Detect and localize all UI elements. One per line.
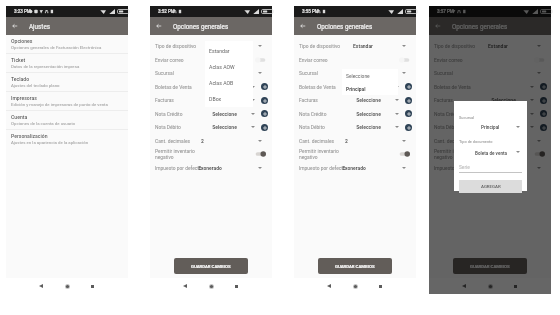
button[interactable]: Permitir inventario: [429, 147, 551, 161]
button[interactable]: Impresoras: [6, 92, 128, 111]
button[interactable]: Impuesto por defecto: [294, 161, 416, 175]
staticText: Aclas AOB: [209, 80, 234, 86]
button[interactable]: Estandar: [209, 43, 253, 59]
button[interactable]: Toggle: [255, 57, 266, 63]
button[interactable]: Tipo de dispositivo: [294, 39, 416, 53]
button[interactable]: Impuesto por defecto: [429, 161, 551, 175]
button[interactable]: GUARDAR CAMBIOS: [174, 258, 248, 274]
button[interactable]: Sucursal: [150, 66, 272, 80]
button[interactable]: Nota Crédito: [150, 107, 272, 120]
button[interactable]: Aclas AOB: [209, 75, 253, 91]
button[interactable]: Recents: [372, 278, 388, 294]
button[interactable]: Recents: [228, 278, 244, 294]
button[interactable]: Home: [59, 278, 75, 294]
button[interactable]: Add: [261, 97, 268, 104]
button[interactable]: Add: [261, 110, 268, 117]
button[interactable]: Boletas de Venta: [150, 80, 272, 93]
button[interactable]: Nota Crédito: [294, 107, 416, 120]
button[interactable]: Home: [203, 278, 219, 294]
button[interactable]: Add: [540, 110, 547, 117]
staticText: Exonerado: [342, 165, 366, 171]
button[interactable]: AGREGAR: [459, 180, 522, 193]
button[interactable]: Teclado: [6, 73, 128, 92]
staticText: Ajustes en la apariencia de la aplicació…: [11, 140, 89, 145]
staticText: Permitir inventario: [299, 148, 339, 154]
button[interactable]: Principal: [346, 82, 398, 95]
staticText: negativo: [299, 154, 318, 160]
button[interactable]: GUARDAR CAMBIOS: [453, 258, 527, 274]
button[interactable]: Back: [429, 17, 447, 35]
button[interactable]: Boletas de Venta: [294, 80, 416, 93]
staticText: Opciones generales: [452, 23, 508, 30]
button[interactable]: Toggle: [399, 57, 410, 63]
button[interactable]: Ticket: [6, 54, 128, 73]
button[interactable]: Add: [405, 97, 412, 104]
button[interactable]: Nota Débito: [150, 120, 272, 134]
button[interactable]: GUARDAR CAMBIOS: [318, 258, 392, 274]
button[interactable]: Nota Débito: [429, 120, 551, 134]
button[interactable]: DBox: [209, 91, 253, 107]
button[interactable]: Cuenta: [6, 111, 128, 130]
staticText: Facturas: [434, 97, 453, 103]
button[interactable]: Toggle: [255, 151, 266, 157]
button[interactable]: Back: [6, 17, 24, 35]
button[interactable]: Back: [294, 17, 312, 35]
button[interactable]: Enviar correo: [429, 53, 551, 66]
button[interactable]: Recents: [84, 278, 100, 294]
button[interactable]: Home: [347, 278, 363, 294]
button[interactable]: Add: [540, 97, 547, 104]
staticText: Principal: [481, 125, 500, 130]
button[interactable]: Tipo de dispositivo: [429, 39, 551, 53]
other: Back: [12, 23, 18, 29]
staticText: GUARDAR CAMBIOS: [470, 264, 510, 269]
button[interactable]: Home: [482, 278, 498, 294]
button[interactable]: Add: [261, 83, 268, 90]
other: Back: [435, 23, 441, 29]
staticText: GUARDAR CAMBIOS: [191, 264, 231, 269]
button[interactable]: Personalización: [6, 130, 128, 149]
staticText: 3:55 PM: [302, 9, 319, 14]
button[interactable]: Back: [177, 278, 193, 294]
button[interactable]: Facturas: [294, 93, 416, 107]
button[interactable]: Back: [321, 278, 337, 294]
button[interactable]: Seleccione: [346, 69, 398, 82]
button[interactable]: Cant. decimales: [150, 134, 272, 147]
button[interactable]: Sucursal: [429, 66, 551, 80]
button[interactable]: Cant. decimales: [294, 134, 416, 147]
button[interactable]: Recents: [507, 278, 523, 294]
button[interactable]: Sucursal: [294, 66, 416, 80]
button[interactable]: Impuesto por defecto: [150, 161, 272, 175]
button[interactable]: Facturas: [150, 93, 272, 107]
button[interactable]: Add: [405, 110, 412, 117]
button[interactable]: Back: [150, 17, 168, 35]
button[interactable]: Back: [33, 278, 49, 294]
button[interactable]: Toggle: [534, 151, 545, 157]
staticText: Cant. decimales: [434, 138, 470, 144]
button[interactable]: Cant. decimales: [429, 134, 551, 147]
button[interactable]: Tipo de dispositivo: [150, 39, 272, 53]
button[interactable]: Toggle: [399, 151, 410, 157]
button[interactable]: Opciones: [6, 35, 128, 54]
button[interactable]: Permitir inventario: [150, 147, 272, 161]
staticText: Nota Crédito: [434, 111, 462, 117]
button[interactable]: Boletas de Venta: [429, 80, 551, 93]
staticText: Permitir inventario: [434, 148, 474, 154]
button[interactable]: Nota Débito: [294, 120, 416, 134]
button[interactable]: Aclas AOW: [209, 59, 253, 75]
button[interactable]: Add: [261, 124, 268, 131]
button[interactable]: Facturas: [429, 93, 551, 107]
button[interactable]: Back: [456, 278, 472, 294]
button[interactable]: Nota Crédito: [429, 107, 551, 120]
button[interactable]: Add: [405, 83, 412, 90]
button[interactable]: Permitir inventario: [294, 147, 416, 161]
button[interactable]: Toggle: [534, 57, 545, 63]
staticText: Sucursal: [299, 70, 318, 76]
button[interactable]: Add: [540, 124, 547, 131]
button[interactable]: Enviar correo: [294, 53, 416, 66]
button[interactable]: Add: [540, 83, 547, 90]
staticText: Edición y manejo de impresoras de punto …: [11, 102, 108, 107]
button[interactable]: Add: [405, 124, 412, 131]
button[interactable]: Enviar correo: [150, 53, 272, 66]
